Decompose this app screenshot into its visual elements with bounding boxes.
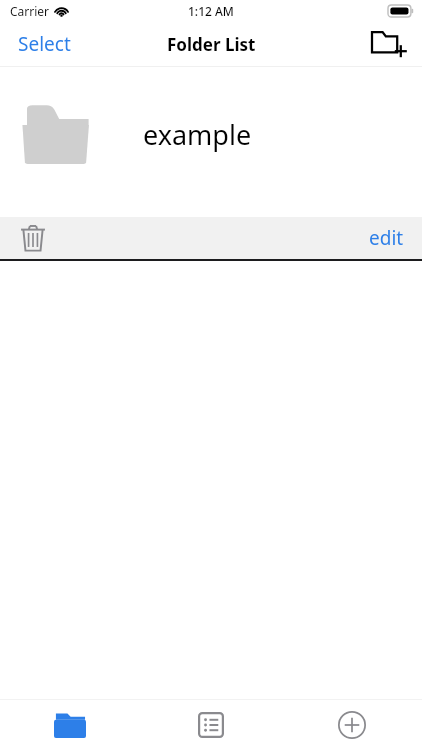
button[interactable]: Delete	[0, 218, 66, 258]
staticText: Carrier	[10, 3, 50, 19]
button[interactable]: List	[140, 700, 281, 750]
button[interactable]: Add	[281, 700, 422, 750]
button[interactable]: Select	[0, 23, 89, 65]
staticText: example	[143, 116, 252, 153]
staticText: 1:12 AM	[188, 3, 234, 19]
button[interactable]: edit	[351, 219, 422, 257]
button[interactable]: New Folder	[362, 23, 422, 65]
staticText: Select	[18, 31, 71, 57]
staticText: Folder List	[167, 33, 256, 56]
button[interactable]: example	[0, 67, 422, 217]
staticText: edit	[369, 225, 404, 251]
button[interactable]: Folders	[0, 700, 140, 750]
